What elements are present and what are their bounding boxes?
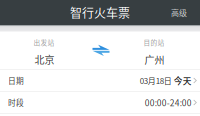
staticText: 时段: [8, 97, 24, 108]
button[interactable]: 时段: [0, 92, 200, 113]
staticText: 今天: [174, 74, 192, 87]
staticText: 北京: [34, 52, 54, 67]
staticText: 目的站: [143, 37, 164, 47]
staticText: 出发站: [33, 37, 54, 47]
staticText: 广州: [144, 52, 164, 67]
button[interactable]: Swap stations: [91, 44, 110, 56]
button[interactable]: 目的站: [110, 34, 200, 66]
staticText: 00:00-24:00: [145, 96, 192, 109]
button[interactable]: 日期: [0, 70, 200, 91]
staticText: 智行火车票: [70, 4, 130, 21]
staticText: 03月18日: [140, 75, 172, 86]
staticText: 高级: [171, 7, 187, 18]
staticText: 日期: [8, 75, 24, 86]
button[interactable]: 高级: [171, 2, 200, 23]
button[interactable]: 出发站: [0, 34, 91, 66]
